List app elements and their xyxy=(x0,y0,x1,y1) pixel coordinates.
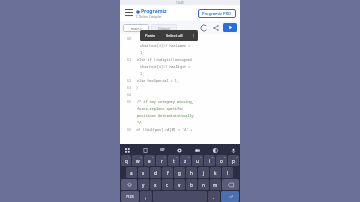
button[interactable]: main.c xyxy=(123,24,149,32)
staticText: char)out[i])) hasDigit = xyxy=(140,64,191,69)
button[interactable]: q xyxy=(121,155,131,166)
staticText: m xyxy=(213,182,218,188)
button[interactable]: h xyxy=(186,167,197,178)
staticText: 7 xyxy=(200,155,202,158)
staticText: main.c xyxy=(131,26,142,31)
staticText: g xyxy=(178,170,181,176)
button[interactable]: Refresh xyxy=(199,23,208,32)
staticText: j xyxy=(203,170,205,176)
button[interactable]: i xyxy=(204,155,215,166)
button[interactable]: , xyxy=(140,191,152,202)
staticText: 65 xyxy=(127,99,132,104)
staticText: , xyxy=(145,194,147,200)
button[interactable]: s xyxy=(138,167,149,178)
button[interactable]: Backspace xyxy=(222,179,239,190)
staticText: x xyxy=(154,182,157,188)
button[interactable]: l xyxy=(222,167,233,178)
staticText: 1 xyxy=(128,155,130,158)
button[interactable]: e xyxy=(144,155,155,166)
staticText: ?123 xyxy=(126,194,134,199)
staticText: Select all xyxy=(166,33,183,38)
staticText: 62 xyxy=(127,78,132,83)
staticText: 6 xyxy=(188,155,190,158)
staticText: 0 xyxy=(236,155,238,158)
button[interactable]: m xyxy=(210,179,221,190)
button[interactable]: Programiz xyxy=(136,8,167,19)
staticText: else hasSpecial = 1; xyxy=(137,78,179,83)
staticText: e xyxy=(148,158,151,164)
button[interactable]: . xyxy=(208,191,220,202)
staticText: Paste xyxy=(145,33,156,38)
staticText: Programiz xyxy=(141,8,167,15)
staticText: . xyxy=(213,194,215,200)
button[interactable]: k xyxy=(210,167,221,178)
button[interactable]: Symbols xyxy=(121,191,139,202)
staticText: v xyxy=(178,182,181,188)
button[interactable]: GIF xyxy=(159,146,166,153)
button[interactable]: Clipboard xyxy=(141,146,149,154)
button[interactable]: More options xyxy=(188,30,198,41)
button[interactable]: r xyxy=(156,155,167,166)
staticText: u xyxy=(196,158,199,164)
staticText: 61 xyxy=(127,57,132,62)
button[interactable]: Programiz PRO xyxy=(198,9,236,18)
button[interactable]: Theme xyxy=(211,146,219,154)
button[interactable]: u xyxy=(192,155,203,166)
staticText: GIF xyxy=(160,148,165,152)
button[interactable]: Select all xyxy=(161,31,188,40)
staticText: else if (isdigit((unsigned xyxy=(137,57,192,62)
staticText: char)out[i])) hasLower = xyxy=(140,43,191,48)
button[interactable]: f xyxy=(162,167,173,178)
staticText: p xyxy=(232,158,235,164)
button[interactable]: y xyxy=(138,179,149,190)
button[interactable]: b xyxy=(186,179,197,190)
button[interactable]: Menu xyxy=(124,8,134,18)
button[interactable]: Apps xyxy=(123,146,131,154)
button[interactable]: d xyxy=(150,167,161,178)
staticText: 10:45 xyxy=(176,1,184,5)
button[interactable]: z xyxy=(180,155,191,166)
button[interactable]: Output xyxy=(151,24,177,32)
staticText: 64 xyxy=(127,92,132,97)
staticText: h xyxy=(190,170,193,176)
button[interactable]: c xyxy=(162,179,173,190)
button[interactable]: Shift xyxy=(121,179,137,190)
button[interactable]: o xyxy=(216,155,227,166)
staticText: k xyxy=(214,170,217,176)
staticText: 8 xyxy=(212,155,214,158)
button[interactable]: Enter xyxy=(221,191,239,202)
button[interactable]: v xyxy=(174,179,185,190)
button[interactable]: g xyxy=(174,167,185,178)
staticText: y xyxy=(142,182,145,188)
staticText: n xyxy=(202,182,205,188)
button[interactable]: n xyxy=(198,179,209,190)
button[interactable]: Voice input xyxy=(229,146,237,154)
staticText: 3 xyxy=(152,155,154,158)
button[interactable]: a xyxy=(126,167,137,178)
button[interactable]: p xyxy=(228,155,239,166)
button[interactable]: Paste xyxy=(140,31,161,40)
button[interactable]: Settings xyxy=(175,146,183,154)
staticText: 9 xyxy=(224,155,226,158)
button[interactable]: Run xyxy=(223,23,237,32)
staticText: z xyxy=(184,158,187,164)
staticText: if ((bul[pos].n4[0] = 'A' + xyxy=(136,127,193,132)
button[interactable]: x xyxy=(150,179,161,190)
button[interactable]: t xyxy=(168,155,179,166)
staticText: C Online Compiler xyxy=(136,15,162,19)
staticText: f xyxy=(167,170,169,176)
button[interactable]: Translate xyxy=(193,146,201,154)
staticText: 66 xyxy=(127,127,132,132)
staticText: w xyxy=(136,158,140,164)
button[interactable]: j xyxy=(198,167,209,178)
staticText: 1; xyxy=(140,71,145,76)
button[interactable]: w xyxy=(132,155,143,166)
staticText: 4 xyxy=(164,155,166,158)
staticText: d xyxy=(154,170,157,176)
staticText: 2 xyxy=(140,155,142,158)
staticText: Output xyxy=(158,26,170,31)
staticText: c xyxy=(166,182,169,188)
button[interactable]: Share xyxy=(211,23,220,32)
staticText: 63 xyxy=(127,85,132,90)
